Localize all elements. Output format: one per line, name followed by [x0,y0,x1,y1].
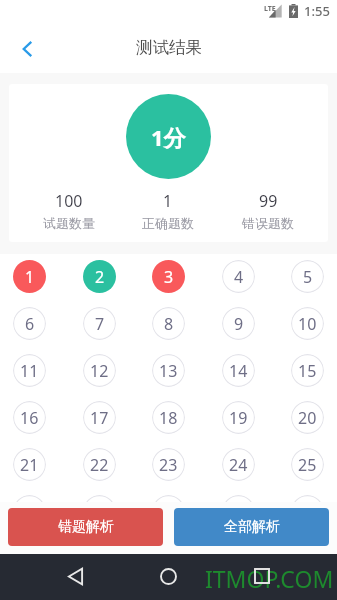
staticText: 8 [164,313,174,335]
button[interactable]: 11 [13,354,46,387]
button[interactable]: 错题解析 [8,508,163,546]
button[interactable]: 24 [222,448,255,481]
button[interactable]: 26 [13,495,46,528]
staticText: 10 [298,313,317,335]
staticText: ITMOP.COM [205,563,334,594]
staticText: 12 [90,360,109,382]
staticText: 6 [25,313,35,335]
button[interactable]: 25 [291,448,324,481]
staticText: 30 [298,501,317,523]
staticText: 测试结果 [136,37,202,58]
staticText: 1:55 [304,2,330,20]
staticText: 13 [159,360,178,382]
staticText: 错误题数 [242,215,294,231]
button[interactable]: 20 [291,401,324,434]
button[interactable]: Home [152,560,184,592]
staticText: 9 [234,313,244,335]
staticText: 28 [159,501,178,523]
button[interactable]: 6 [13,307,46,340]
staticText: 11 [20,360,39,382]
button[interactable]: 17 [83,401,116,434]
button[interactable]: 19 [222,401,255,434]
button[interactable]: 2 [83,260,116,293]
button[interactable]: 18 [152,401,185,434]
staticText: LTE [264,4,276,14]
button[interactable]: 28 [152,495,185,528]
button[interactable]: 1 [13,260,46,293]
staticText: 1分 [151,122,186,152]
button[interactable]: 4 [222,260,255,293]
staticText: 25 [298,454,317,476]
staticText: 错题解析 [58,518,114,536]
staticText: 100 [55,190,83,212]
staticText: 24 [229,454,248,476]
button[interactable]: Back [0,22,54,73]
staticText: 99 [259,190,278,212]
button[interactable]: 23 [152,448,185,481]
button[interactable]: 12 [83,354,116,387]
button[interactable]: 14 [222,354,255,387]
staticText: 23 [159,454,178,476]
staticText: 22 [90,454,109,476]
button[interactable]: 22 [83,448,116,481]
button[interactable]: 27 [83,495,116,528]
staticText: 2 [95,266,105,288]
button[interactable]: 7 [83,307,116,340]
button[interactable]: 8 [152,307,185,340]
staticText: 正确题数 [142,215,194,231]
button[interactable]: 3 [152,260,185,293]
button[interactable]: Back [59,560,91,592]
staticText: 15 [298,360,317,382]
button[interactable]: 13 [152,354,185,387]
staticText: 19 [229,407,248,429]
staticText: 3 [164,266,174,288]
staticText: 全部解析 [224,518,280,536]
staticText: 17 [90,407,109,429]
button[interactable]: 16 [13,401,46,434]
button[interactable]: Recents [246,560,278,592]
staticText: 5 [303,266,313,288]
staticText: 27 [90,501,109,523]
button[interactable]: 30 [291,495,324,528]
staticText: 4 [234,266,244,288]
staticText: 1 [25,266,35,288]
button[interactable]: 全部解析 [174,508,329,546]
button[interactable]: 29 [222,495,255,528]
staticText: 29 [229,501,248,523]
staticText: 试题数量 [43,215,95,231]
staticText: 18 [159,407,178,429]
staticText: 26 [20,501,39,523]
staticText: 7 [95,313,105,335]
button[interactable]: 10 [291,307,324,340]
button[interactable]: 21 [13,448,46,481]
staticText: 21 [20,454,39,476]
staticText: 16 [20,407,39,429]
button[interactable]: 9 [222,307,255,340]
staticText: 1 [163,190,173,212]
button[interactable]: 5 [291,260,324,293]
button[interactable]: 15 [291,354,324,387]
staticText: 20 [298,407,317,429]
staticText: 14 [229,360,248,382]
